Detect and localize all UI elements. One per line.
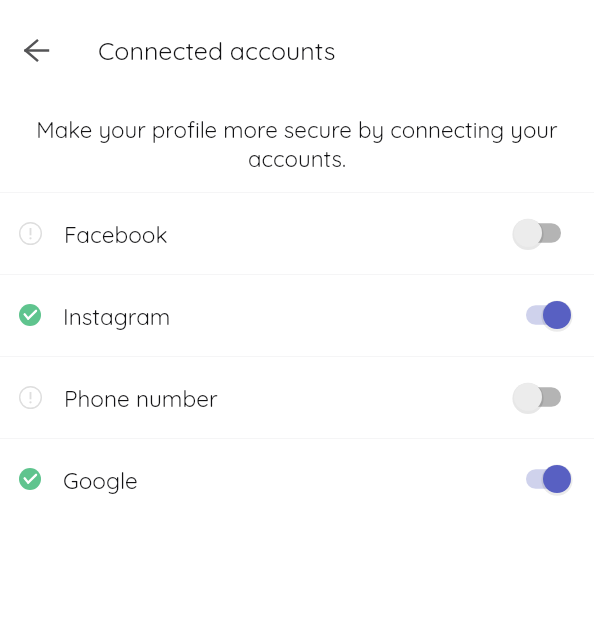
button[interactable]: Google <box>0 438 594 520</box>
staticText: Make your profile more secure by connect… <box>18 116 576 173</box>
button[interactable]: Enabled <box>500 459 580 499</box>
staticText: Connected accounts <box>98 35 336 66</box>
staticText: Facebook <box>64 220 168 248</box>
button[interactable]: Back <box>12 26 60 74</box>
button[interactable]: Disabled <box>500 377 580 417</box>
button[interactable]: Facebook <box>0 192 594 274</box>
staticText: Phone number <box>64 384 218 412</box>
button[interactable]: Instagram <box>0 274 594 356</box>
button[interactable]: Enabled <box>500 295 580 335</box>
button[interactable]: Phone number <box>0 356 594 438</box>
button[interactable]: Disabled <box>500 213 580 253</box>
staticText: Google <box>63 466 138 494</box>
staticText: Instagram <box>63 302 171 330</box>
